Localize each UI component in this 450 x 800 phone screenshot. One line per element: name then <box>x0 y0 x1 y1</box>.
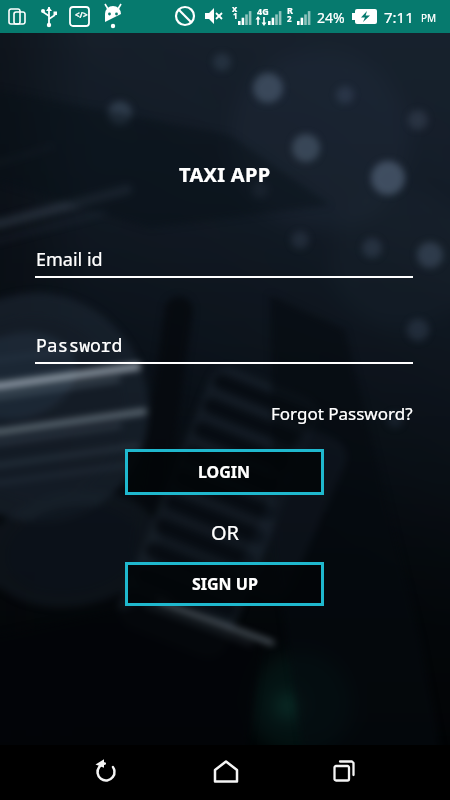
staticText: 24% <box>317 8 345 27</box>
button[interactable]: Email id <box>35 246 413 278</box>
button[interactable]: Password <box>35 331 413 364</box>
button[interactable]: LOGIN <box>125 449 324 495</box>
staticText: Password <box>36 333 123 358</box>
staticText: TAXI APP <box>179 161 271 188</box>
staticText: 4G <box>257 5 269 17</box>
staticText: PM <box>421 11 437 25</box>
staticText: OR <box>211 519 240 546</box>
staticText: </> <box>75 9 88 20</box>
button[interactable] <box>0 745 150 800</box>
staticText: 1 <box>233 10 238 21</box>
button[interactable] <box>300 745 450 800</box>
button[interactable]: Forgot Password? <box>271 402 413 425</box>
button[interactable]: SIGN UP <box>125 562 324 606</box>
staticText: SIGN UP <box>192 573 258 595</box>
staticText: 7:11 <box>384 7 414 27</box>
staticText: x <box>232 2 238 14</box>
staticText: Email id <box>36 247 103 272</box>
staticText: R <box>287 4 293 16</box>
staticText: 2 <box>287 13 292 24</box>
staticText: LOGIN <box>198 461 251 483</box>
button[interactable] <box>150 745 300 800</box>
